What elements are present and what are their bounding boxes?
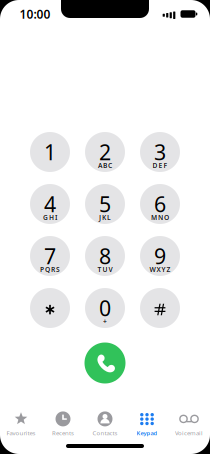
- staticText: 1: [44, 138, 56, 166]
- staticText: P Q R S: [40, 265, 60, 274]
- staticText: Contacts: [92, 429, 117, 437]
- staticText: 0: [99, 294, 111, 322]
- button[interactable]: Contacts: [84, 412, 126, 436]
- button[interactable]: Voicemail: [168, 412, 210, 436]
- staticText: Favourites: [6, 429, 35, 437]
- staticText: 9: [154, 242, 166, 270]
- button[interactable]: 0: [85, 288, 125, 328]
- staticText: 6: [154, 190, 166, 218]
- button[interactable]: 2: [85, 132, 125, 172]
- staticText: Recents: [52, 429, 74, 437]
- staticText: W X Y Z: [149, 265, 170, 274]
- button[interactable]: 1: [30, 132, 70, 172]
- staticText: Voicemail: [175, 429, 203, 437]
- staticText: 7: [44, 242, 56, 270]
- button[interactable]: 9: [140, 236, 180, 276]
- button[interactable]: 4: [30, 184, 70, 224]
- button[interactable]: 6: [140, 184, 180, 224]
- staticText: A B C: [98, 161, 112, 170]
- button[interactable]: Keypad: [126, 412, 168, 436]
- staticText: 4: [44, 190, 56, 218]
- staticText: +: [103, 317, 107, 326]
- button[interactable]: *: [30, 288, 70, 328]
- staticText: J K L: [99, 213, 111, 222]
- button[interactable]: 7: [30, 236, 70, 276]
- staticText: M N O: [151, 213, 169, 222]
- staticText: D E F: [152, 161, 167, 170]
- staticText: 5: [99, 190, 111, 218]
- staticText: 10:00: [19, 6, 50, 22]
- button[interactable]: Call: [84, 342, 125, 383]
- button[interactable]: Recents: [42, 412, 84, 436]
- staticText: 2: [99, 138, 111, 166]
- button[interactable]: 8: [85, 236, 125, 276]
- button[interactable]: 5: [85, 184, 125, 224]
- button[interactable]: 3: [140, 132, 180, 172]
- staticText: 3: [154, 138, 166, 166]
- button[interactable]: #: [140, 288, 180, 328]
- button[interactable]: Favourites: [0, 412, 42, 436]
- staticText: 8: [99, 242, 111, 270]
- staticText: G H I: [43, 213, 57, 222]
- staticText: Keypad: [136, 429, 157, 437]
- staticText: T U V: [97, 265, 112, 274]
